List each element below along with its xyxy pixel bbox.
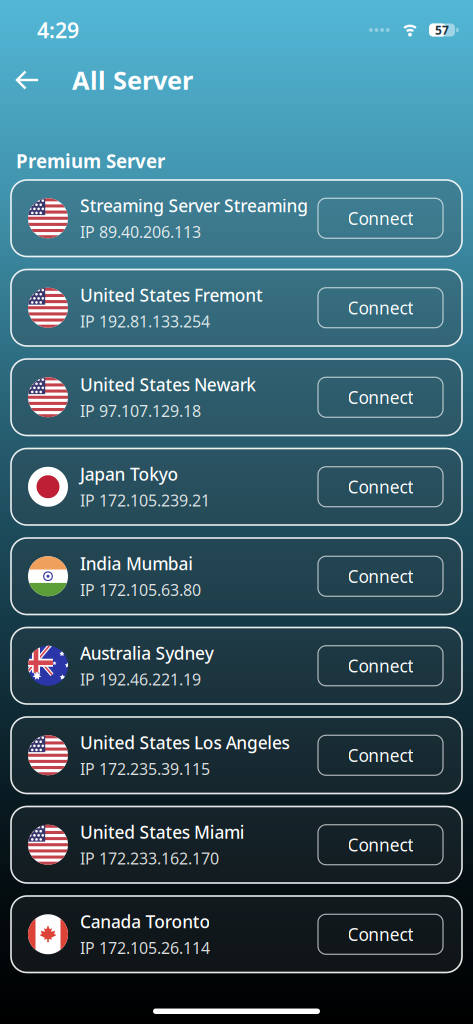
staticText: IP 89.40.206.113 [80,221,201,242]
staticText: Connect [348,296,413,319]
staticText: United States Newark [80,373,256,396]
button[interactable]: Connect [318,914,443,954]
button[interactable]: Back [0,62,41,98]
staticText: All Server [72,63,193,97]
staticText: 4:29 [37,16,79,44]
staticText: Connect [348,654,413,677]
button[interactable]: Connect [318,556,443,596]
staticText: IP 192.46.221.19 [80,669,201,690]
staticText: IP 172.105.26.114 [80,937,210,958]
button[interactable]: Connect [318,288,443,328]
staticText: Premium Server [16,149,165,173]
button[interactable]: Connect [318,825,443,865]
button[interactable]: Connect [318,646,443,686]
button[interactable]: Connect [318,198,443,238]
staticText: Connect [348,744,413,767]
staticText: United States Fremont [80,284,263,307]
staticText: IP 172.233.162.170 [80,848,219,869]
staticText: IP 172.105.63.80 [80,579,201,600]
staticText: 57 [435,22,449,38]
button[interactable]: Connect [318,735,443,775]
staticText: Connect [348,386,413,409]
staticText: United States Los Angeles [80,731,290,754]
staticText: IP 192.81.133.254 [80,311,210,332]
staticText: Canada Toronto [80,910,210,933]
staticText: Connect [348,475,413,498]
button[interactable]: Connect [318,377,443,417]
staticText: United States Miami [80,821,245,844]
staticText: Australia Sydney [80,642,214,665]
staticText: Japan Tokyo [80,463,178,486]
staticText: Streaming Server Streaming [80,194,308,217]
staticText: Connect [348,833,413,856]
button[interactable]: Connect [318,467,443,507]
staticText: Connect [348,565,413,588]
staticText: Connect [348,923,413,946]
staticText: Connect [348,207,413,230]
staticText: India Mumbai [80,552,193,575]
staticText: IP 172.105.239.21 [80,490,210,511]
staticText: IP 172.235.39.115 [80,758,210,779]
staticText: IP 97.107.129.18 [80,400,201,421]
